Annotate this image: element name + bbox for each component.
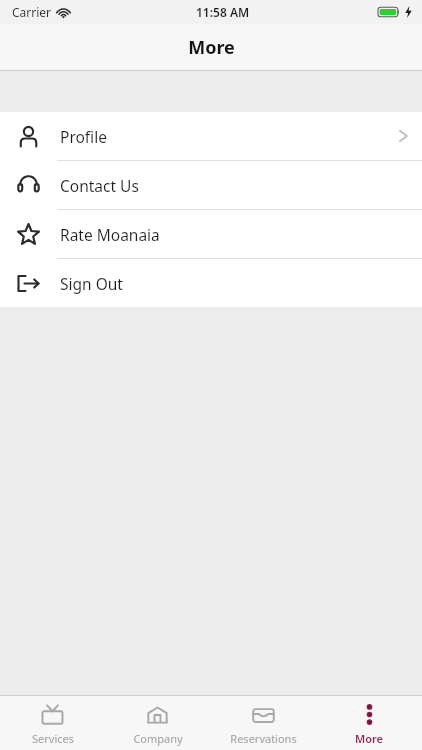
staticText: Sign Out — [60, 273, 123, 294]
staticText: More — [355, 731, 383, 746]
button[interactable]: More — [316, 696, 422, 750]
staticText: Contact Us — [60, 175, 139, 196]
button[interactable]: Rate Moanaia — [0, 210, 422, 258]
button[interactable]: Profile — [0, 112, 422, 160]
staticText: Rate Moanaia — [60, 224, 160, 245]
staticText: More — [188, 35, 235, 60]
button[interactable]: Company — [105, 696, 210, 750]
button[interactable]: Sign Out — [0, 259, 422, 307]
staticText: Services — [32, 731, 74, 746]
staticText: Carrier — [12, 4, 52, 20]
staticText: 11:58 AM — [196, 4, 250, 20]
staticText: Reservations — [230, 731, 297, 746]
button[interactable]: Reservations — [210, 696, 316, 750]
button[interactable]: Contact Us — [0, 161, 422, 209]
staticText: Profile — [60, 126, 107, 147]
staticText: Company — [133, 731, 183, 746]
button[interactable]: Services — [0, 696, 105, 750]
